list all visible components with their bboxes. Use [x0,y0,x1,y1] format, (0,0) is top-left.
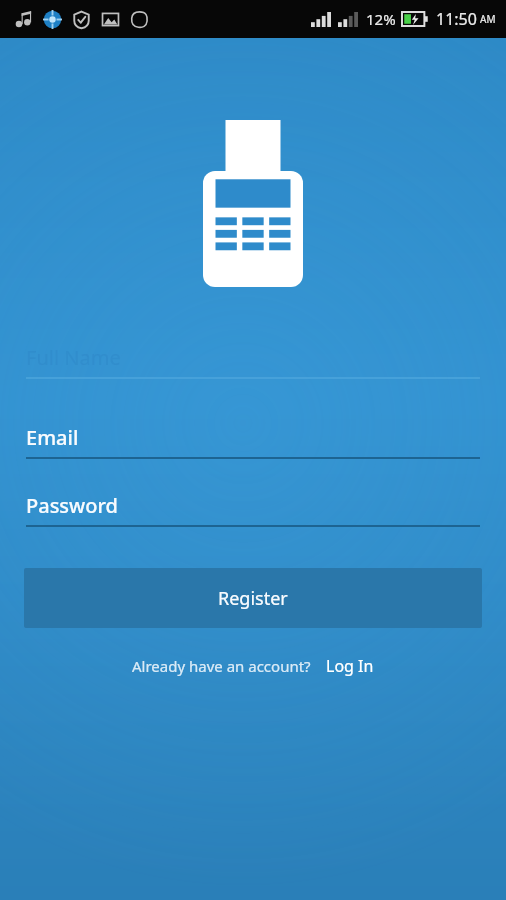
staticText: Register [218,586,288,611]
button[interactable]: Password [0,492,506,527]
staticText: AM [480,12,496,26]
button[interactable]: Already have an account? [130,651,313,681]
button[interactable]: Email [0,424,506,459]
staticText: Email [26,424,79,451]
staticText: 12% [366,9,396,29]
button[interactable]: Full Name [0,344,506,379]
staticText: Already have an account? [132,656,311,676]
button[interactable]: Log In [324,650,376,682]
staticText: Password [26,492,118,519]
staticText: 11:50 [436,8,477,30]
other: App logo, card terminal [203,120,303,287]
button[interactable]: Register [24,568,482,628]
staticText: Log In [326,655,374,677]
